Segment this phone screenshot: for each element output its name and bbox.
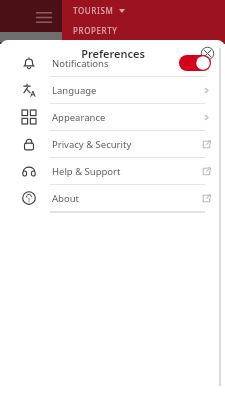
button[interactable]: About — [0, 185, 225, 212]
button[interactable]: Open navigation menu — [33, 6, 55, 28]
button[interactable]: Help & Support — [0, 158, 225, 185]
staticText: About — [52, 192, 202, 205]
button[interactable]: Privacy & Security — [0, 131, 225, 158]
staticText: TOURISM — [73, 5, 114, 16]
staticText: Preferences — [81, 46, 145, 61]
button[interactable]: Notifications toggle, on — [179, 55, 211, 71]
staticText: Notifications — [52, 57, 179, 70]
button[interactable]: Language — [0, 77, 225, 104]
staticText: Appearance — [52, 111, 202, 124]
staticText: PROPERTY — [73, 25, 118, 36]
staticText: Language — [52, 84, 202, 97]
button[interactable]: Appearance — [0, 104, 225, 131]
staticText: Privacy & Security — [52, 138, 202, 151]
staticText: Help & Support — [52, 165, 202, 178]
button[interactable]: Close — [197, 43, 217, 63]
button[interactable]: Notifications — [0, 50, 225, 77]
